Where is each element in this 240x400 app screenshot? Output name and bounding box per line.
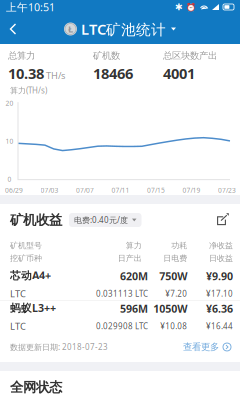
button[interactable]: 查看更多 [183,341,231,353]
staticText: 07/03 [40,186,58,194]
staticText: 矿机收益 [10,212,62,228]
staticText: Ł [68,23,73,35]
staticText: 07/23 [218,186,236,194]
staticText: 功耗 [171,241,187,250]
staticText: 07/07 [76,186,94,194]
staticText: 620M [120,269,148,283]
button[interactable]: 电费:0.40元/度 [69,213,141,227]
button[interactable]: Ł [64,19,176,39]
staticText: 07/19 [182,186,200,194]
staticText: 日电费 [163,253,187,263]
staticText: 芯动A4+ [10,268,51,282]
staticText: 算力 [126,241,142,250]
staticText: 07/15 [147,186,165,194]
staticText: 750W [159,269,187,283]
staticText: 07/11 [111,186,129,194]
staticText: LTC矿池统计 [81,19,166,39]
staticText: 日收益 [209,253,233,263]
staticText: ¥6.36 [206,302,233,316]
staticText: 查看更多 [183,341,219,353]
staticText: 总算力 [8,50,35,61]
staticText: 日产出 [118,253,142,263]
button[interactable]: Share [213,211,231,229]
staticText: 0.029908 LTC [96,321,148,331]
staticText: 净收益 [209,241,233,250]
staticText: ¥10.08 [160,321,187,331]
staticText: ✱ [175,2,183,12]
staticText: 18466 [93,63,133,83]
button[interactable]: Back [0,14,26,44]
staticText: ⏰ [186,2,196,11]
staticText: LTC [10,320,26,332]
staticText: TH/s [46,69,65,81]
staticText: 电费:0.40元/度 [74,215,128,225]
staticText: ¥7.20 [165,288,187,299]
staticText: 4001 [163,63,195,83]
staticText: ¥9.90 [206,269,233,283]
staticText: 596M [120,302,148,316]
staticText: 06/29 [5,186,23,194]
staticText: 1050W [153,302,187,316]
staticText: 20 [5,99,13,107]
staticText: 矿机型号 [10,241,42,250]
staticText: 数据更新日期: 2018-07-23 [10,342,108,352]
staticText: 总区块数产出 [163,50,217,61]
staticText: 0 [7,175,11,184]
staticText: 算力(TH/s) [10,85,47,96]
staticText: 蚂蚁L3++ [10,301,56,315]
staticText: ¥16.44 [206,321,233,331]
staticText: 上午10:51 [6,0,55,14]
staticText: LTC [10,287,26,300]
staticText: ¥17.10 [206,288,233,299]
staticText: 10 [5,137,13,146]
staticText: 0.031113 LTC [96,288,148,299]
staticText: 10.38 [8,63,44,83]
staticText: 挖矿币种 [10,253,42,263]
staticText: 全网状态 [10,379,62,395]
staticText: 矿机数 [93,50,120,61]
